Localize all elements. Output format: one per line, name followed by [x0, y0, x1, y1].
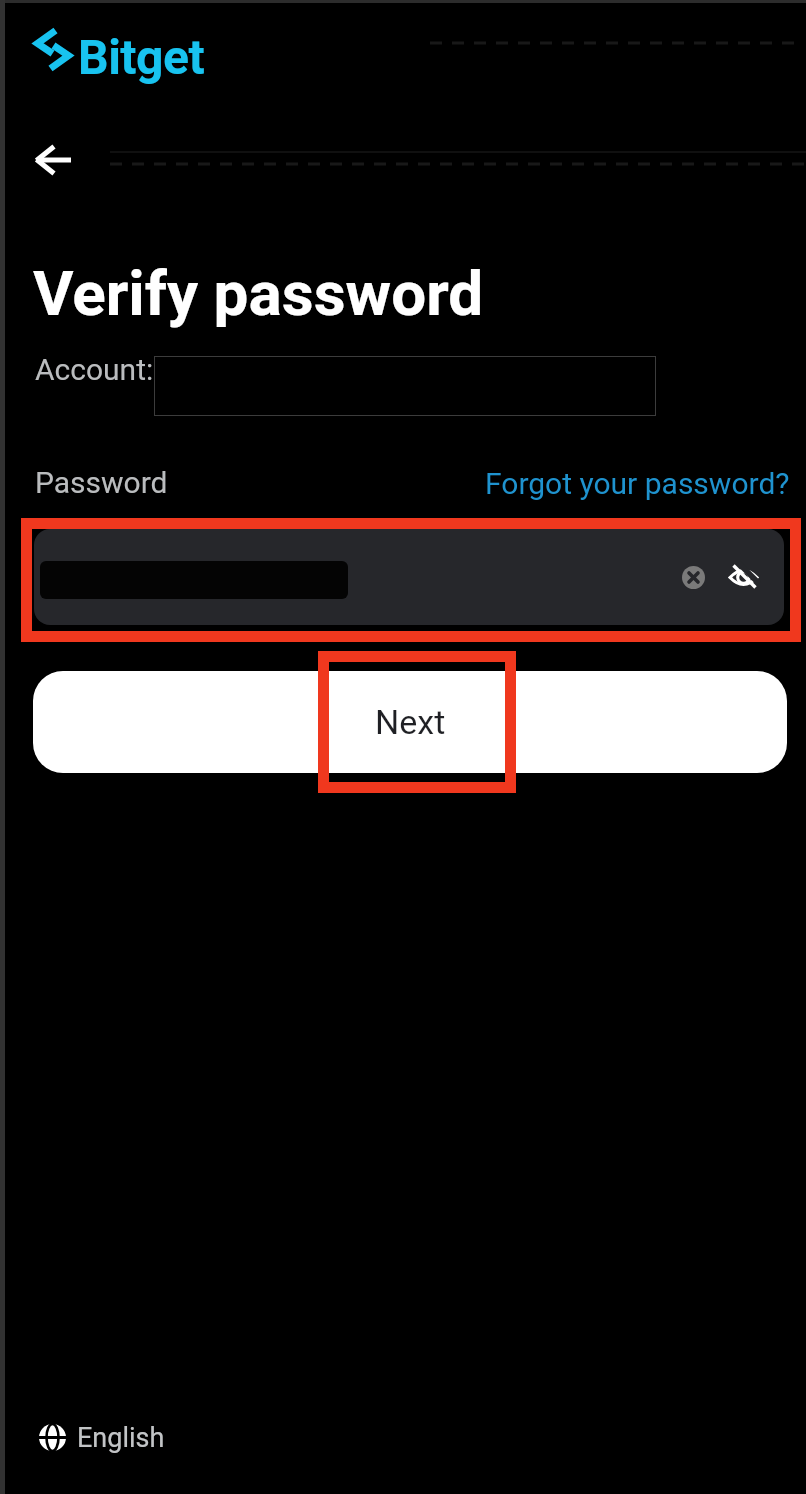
- staticText: Verify password: [33, 257, 484, 330]
- staticText: Account:: [35, 352, 154, 387]
- staticText: Forgot your password?: [485, 466, 790, 501]
- staticText: Password: [35, 465, 168, 500]
- staticText: Bitget: [78, 29, 205, 85]
- button[interactable]: [154, 356, 656, 416]
- button[interactable]: Next: [33, 671, 787, 773]
- staticText: English: [77, 1422, 165, 1454]
- button[interactable]: [25, 135, 85, 185]
- button[interactable]: [34, 529, 784, 625]
- button[interactable]: Forgot your password?: [400, 461, 790, 505]
- button[interactable]: [676, 560, 711, 595]
- button[interactable]: English: [30, 1414, 210, 1462]
- staticText: Next: [375, 702, 446, 742]
- button[interactable]: [722, 555, 766, 599]
